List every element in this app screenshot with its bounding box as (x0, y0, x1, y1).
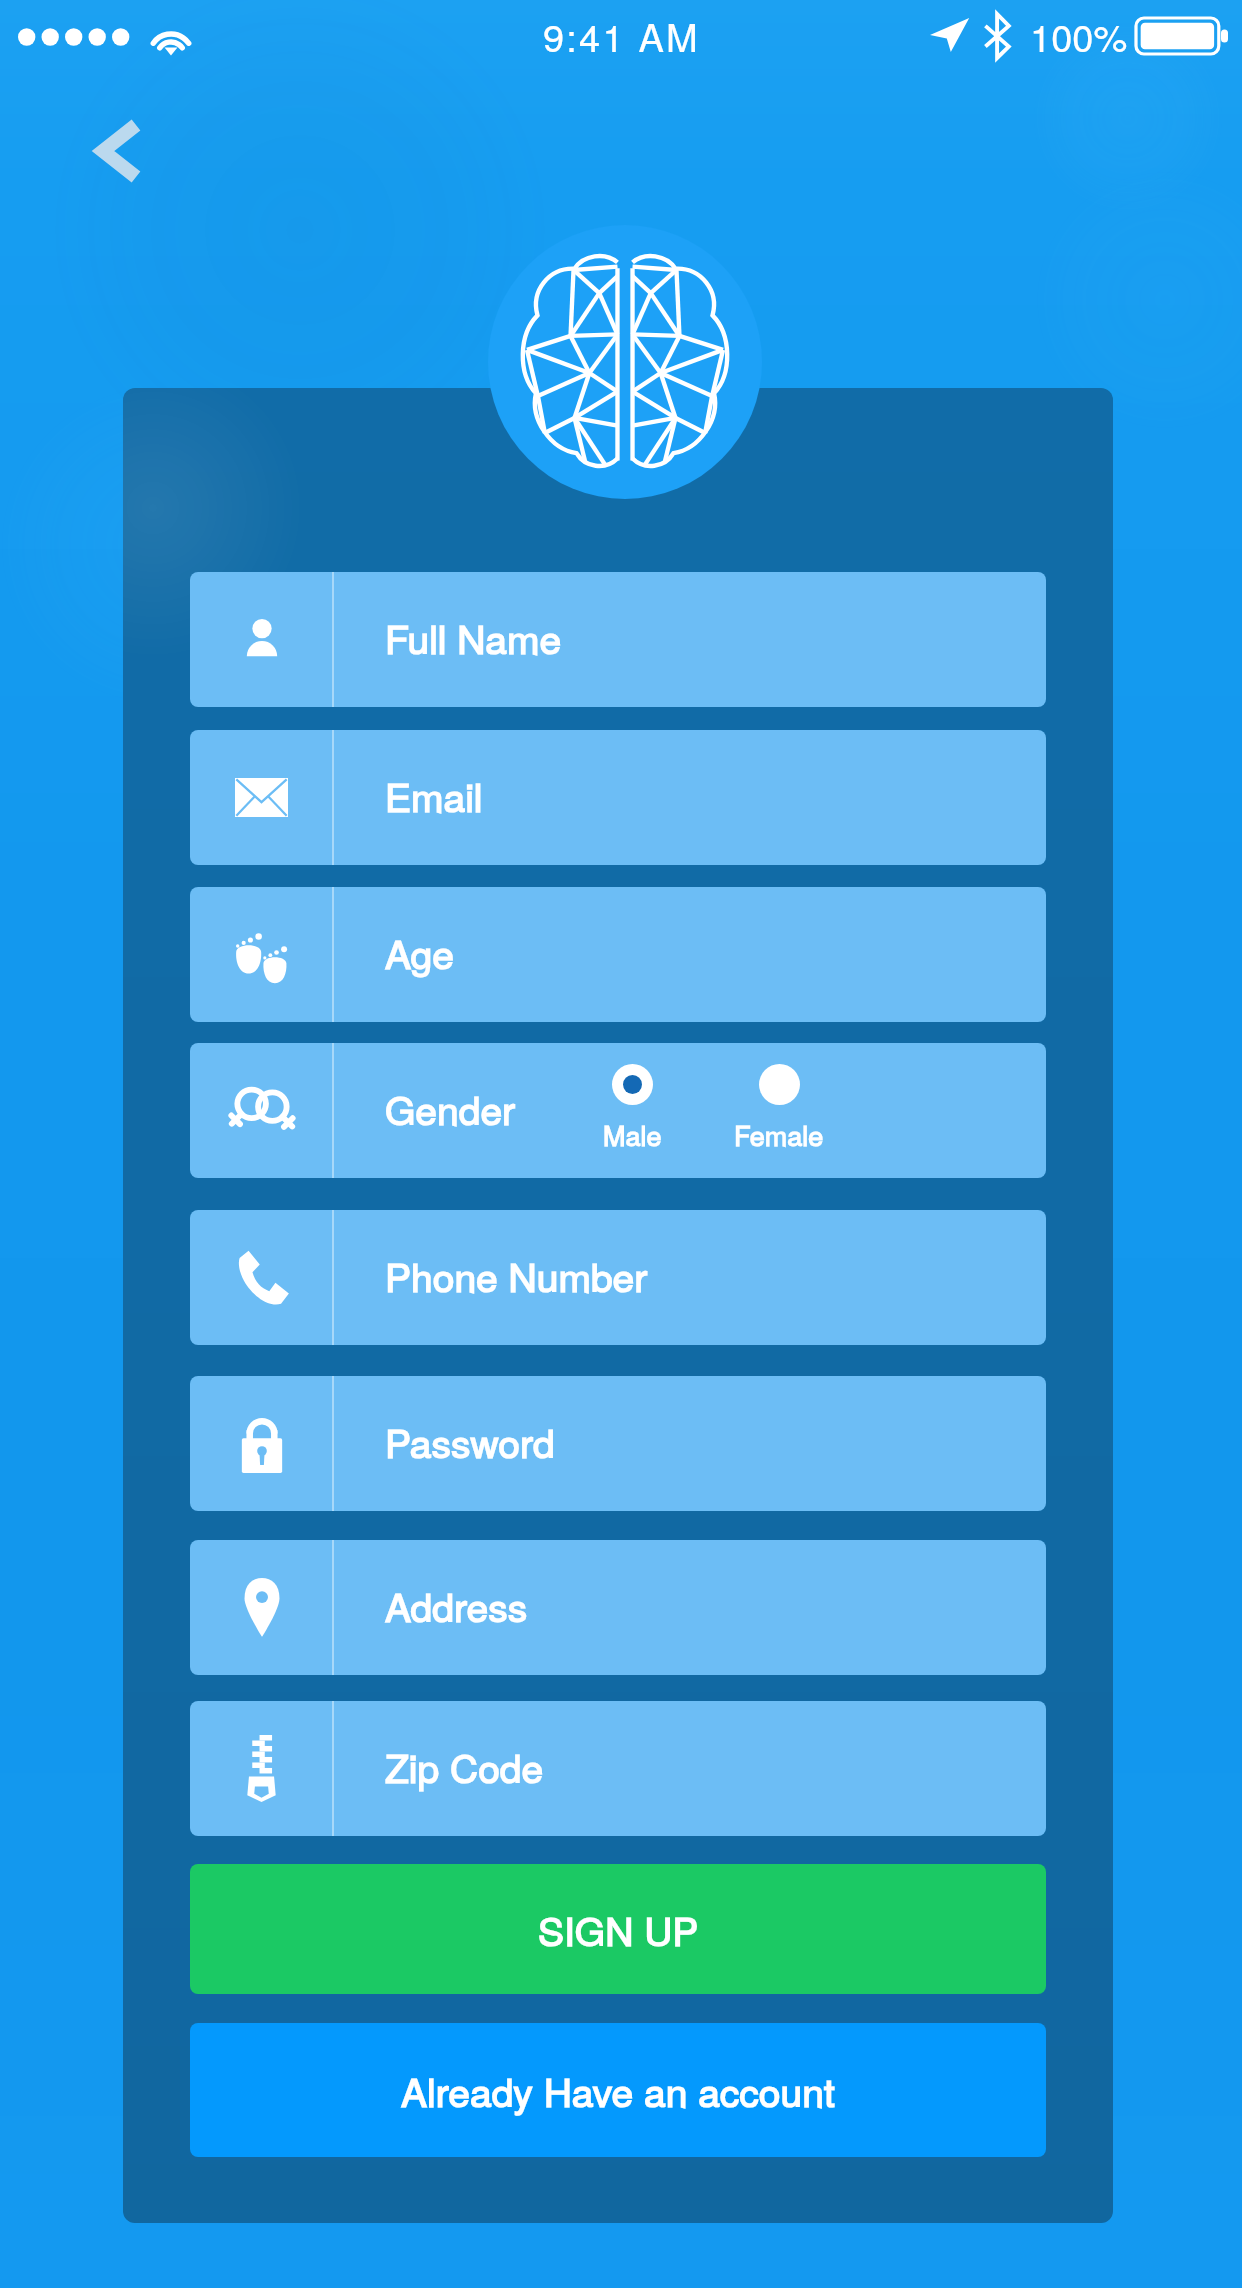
button[interactable]: Full Name (190, 572, 1046, 707)
staticText: Password (385, 1413, 555, 1469)
staticText: Gender (385, 1080, 516, 1136)
button[interactable]: Male (570, 1064, 694, 1174)
button[interactable]: Female (717, 1064, 841, 1174)
staticText: Full Name (385, 609, 562, 665)
button[interactable]: Zip Code (190, 1701, 1046, 1836)
button[interactable]: Gender (190, 1043, 1046, 1178)
staticText: Male (603, 1115, 662, 1154)
staticText: Already Have an account (401, 2062, 835, 2118)
staticText: Age (385, 924, 454, 980)
staticText: SIGN UP (538, 1901, 699, 1957)
button[interactable]: Back (70, 97, 182, 211)
staticText: 9:41 AM (543, 8, 700, 62)
button[interactable]: Email (190, 730, 1046, 865)
staticText: 100% (1030, 8, 1128, 62)
button[interactable]: Already Have an account (190, 2023, 1046, 2157)
staticText: Zip Code (385, 1738, 544, 1794)
staticText: Phone Number (385, 1247, 648, 1303)
button[interactable]: Age (190, 887, 1046, 1022)
staticText: Female (734, 1115, 824, 1154)
button[interactable]: SIGN UP (190, 1864, 1046, 1994)
staticText: Email (385, 767, 483, 823)
staticText: Address (385, 1577, 528, 1633)
button[interactable]: Phone Number (190, 1210, 1046, 1345)
button[interactable]: Password (190, 1376, 1046, 1511)
button[interactable]: Address (190, 1540, 1046, 1675)
